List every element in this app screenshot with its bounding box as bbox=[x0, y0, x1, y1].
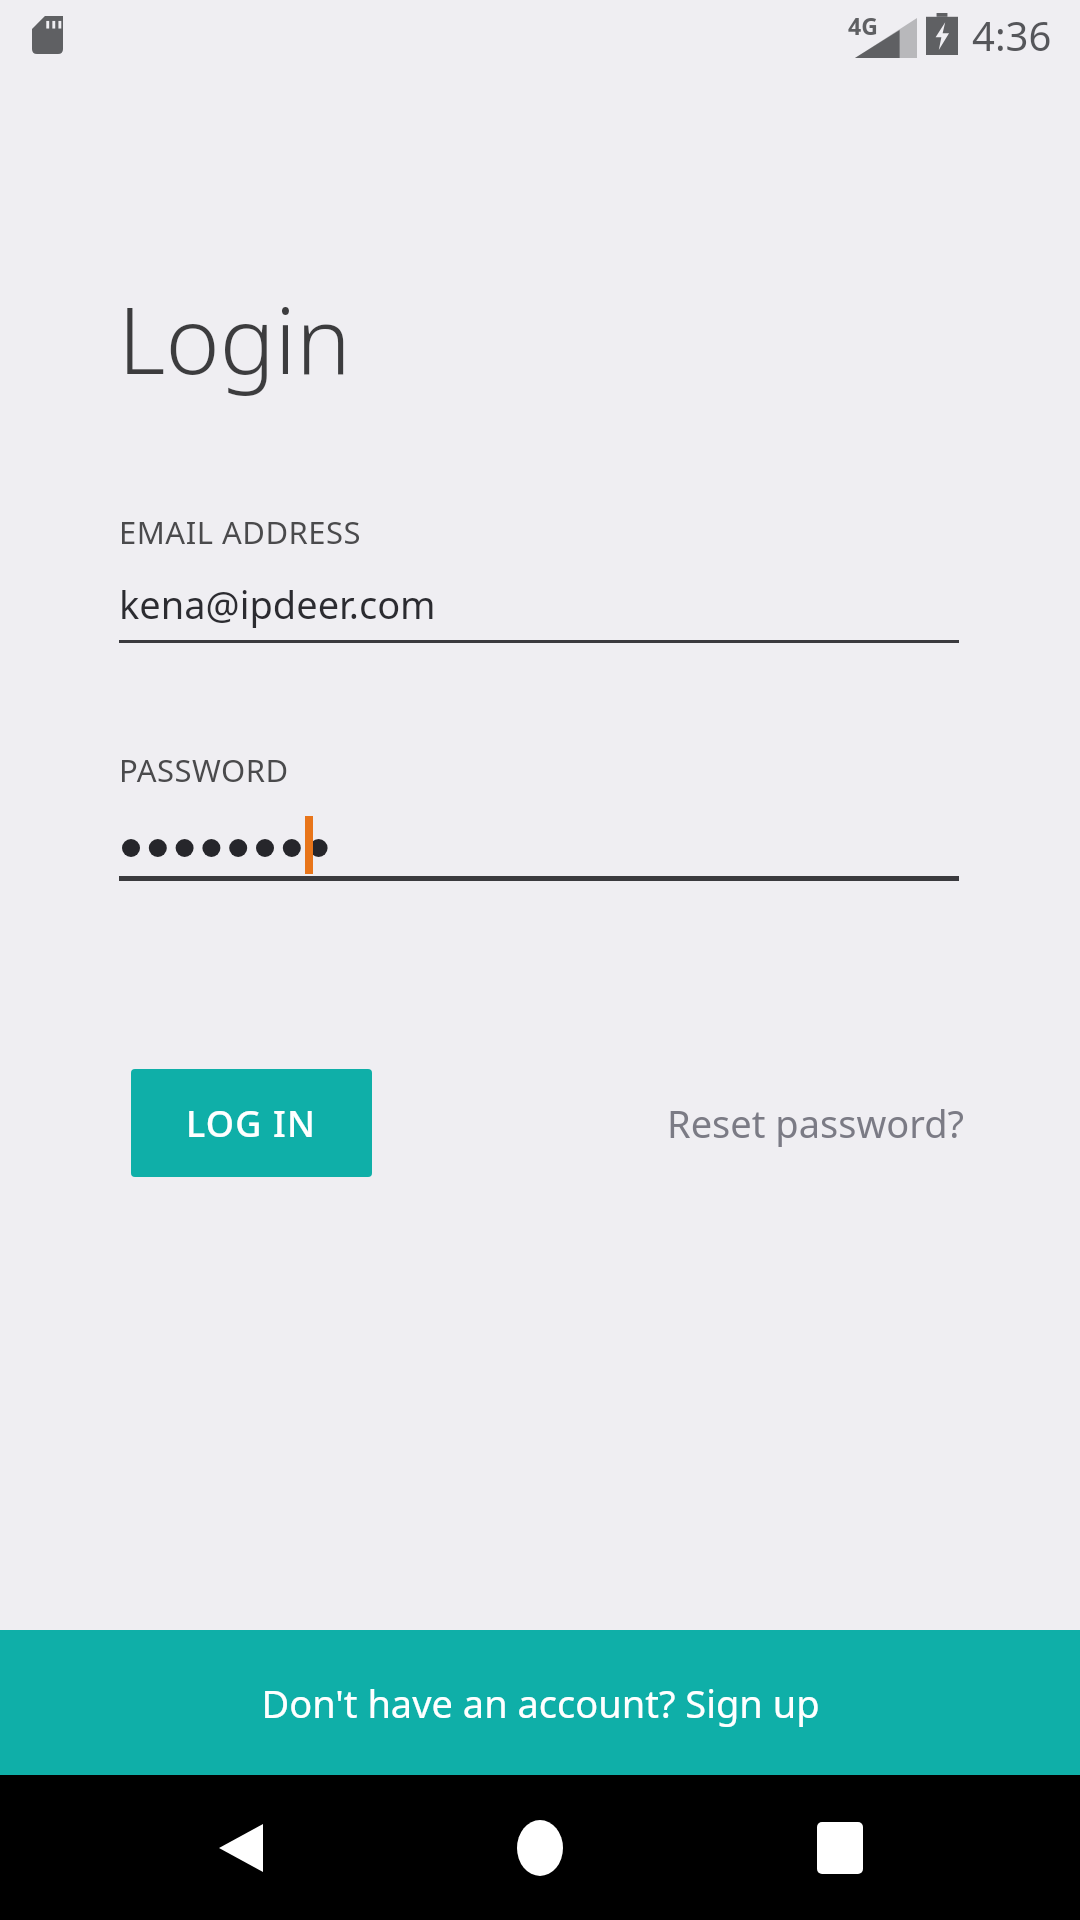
button[interactable]: Reset password? bbox=[620, 1080, 965, 1166]
button[interactable]: Don't have an account? Sign up bbox=[0, 1630, 1080, 1775]
staticText: EMAIL ADDRESS bbox=[119, 511, 362, 553]
button[interactable]: Recent apps bbox=[780, 1805, 900, 1890]
button[interactable]: LOG IN bbox=[131, 1069, 372, 1177]
staticText: 4:36 bbox=[972, 8, 1052, 62]
button[interactable] bbox=[119, 812, 959, 878]
staticText: kena@ipdeer.com bbox=[119, 578, 436, 630]
staticText: 4G bbox=[848, 10, 878, 41]
button[interactable]: Home bbox=[480, 1805, 600, 1890]
staticText: Reset password? bbox=[667, 1097, 965, 1149]
staticText: PASSWORD bbox=[119, 749, 289, 791]
staticText: Don't have an account? Sign up bbox=[261, 1677, 820, 1729]
staticText: Login bbox=[118, 276, 351, 401]
button[interactable]: Back bbox=[180, 1805, 300, 1890]
staticText: LOG IN bbox=[186, 1099, 317, 1148]
button[interactable]: kena@ipdeer.com bbox=[119, 578, 959, 642]
